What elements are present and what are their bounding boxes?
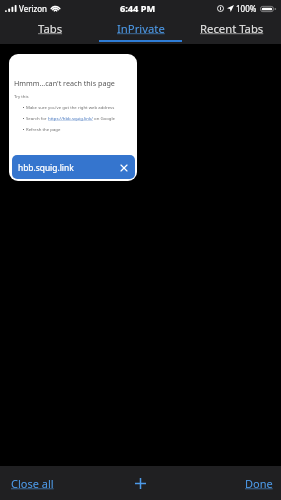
staticText: Recent Tabs [200, 21, 264, 36]
button[interactable]: Close all [0, 466, 93, 500]
staticText: InPrivate [117, 21, 165, 36]
staticText: Try this [14, 93, 29, 99]
button[interactable]: Done [187, 466, 281, 500]
button[interactable]: Recent Tabs [186, 17, 277, 44]
staticText: https://hbb.squig.link/ [48, 115, 93, 121]
staticText: Refresh the page [26, 126, 61, 132]
button[interactable]: Hmmm…can't reach this page [9, 54, 137, 181]
button[interactable]: New tab [93, 466, 187, 500]
staticText: Hmmm…can't reach this page [14, 78, 115, 88]
staticText: Make sure you've got the right web addre… [26, 104, 115, 110]
staticText: hbb.squig.link [18, 162, 74, 173]
staticText: on Google [93, 115, 115, 121]
staticText: Verizon [19, 3, 48, 14]
staticText: Close all [11, 476, 54, 491]
staticText: Tabs [38, 21, 63, 36]
staticText: Done [245, 476, 273, 491]
staticText: 6:44 PM [120, 2, 156, 15]
button[interactable]: InPrivate [95, 17, 186, 44]
staticText: Search for [26, 115, 48, 121]
button[interactable]: Tabs [5, 17, 95, 44]
button[interactable]: Close tab [117, 161, 130, 174]
staticText: 100% [236, 3, 257, 14]
